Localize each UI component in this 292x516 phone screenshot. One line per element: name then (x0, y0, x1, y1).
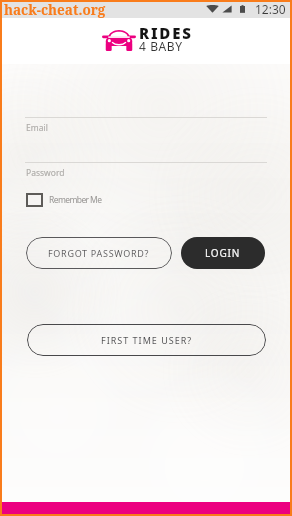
staticText: FIRST TIME USER? (101, 334, 193, 346)
staticText: hack-cheat.org (4, 1, 106, 19)
button[interactable]: FORGOT PASSWORD? (26, 237, 172, 269)
other: Rides 4 Baby logo (102, 27, 136, 52)
button[interactable]: Email (25, 120, 292, 140)
staticText: FORGOT PASSWORD? (48, 247, 150, 259)
button[interactable]: Remember Me (26, 193, 102, 207)
staticText: 12:30 (255, 1, 286, 17)
staticText: Remember Me (49, 194, 102, 206)
button[interactable]: FIRST TIME USER? (27, 324, 266, 356)
staticText: 4 BABY (139, 38, 183, 54)
staticText: Email (26, 122, 48, 134)
button[interactable]: LOGIN (181, 237, 265, 269)
staticText: RIDES (139, 23, 193, 43)
staticText: LOGIN (205, 246, 241, 260)
staticText: Password (26, 167, 65, 179)
button[interactable]: Password (25, 165, 292, 185)
